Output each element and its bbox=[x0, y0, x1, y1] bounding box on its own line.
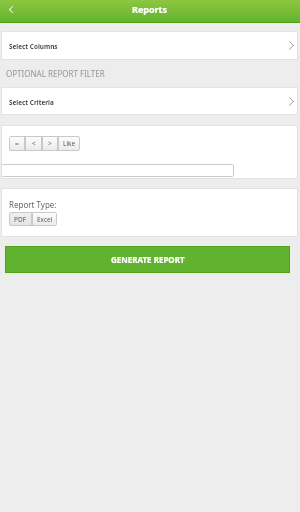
button[interactable]: Select Criteria bbox=[1, 87, 298, 115]
staticText: = bbox=[15, 139, 19, 148]
staticText: OPTIONAL REPORT FILTER bbox=[6, 68, 105, 79]
staticText: Like bbox=[63, 139, 76, 148]
staticText: PDF bbox=[14, 215, 27, 224]
button[interactable]: Excel bbox=[32, 212, 57, 226]
staticText: > bbox=[48, 139, 52, 148]
button[interactable]: > bbox=[42, 136, 58, 151]
button[interactable]: = bbox=[9, 136, 25, 151]
staticText: GENERATE REPORT bbox=[111, 254, 185, 265]
button[interactable]: < bbox=[25, 136, 42, 151]
button[interactable]: Like bbox=[58, 136, 80, 151]
staticText: Excel bbox=[37, 215, 53, 224]
button[interactable]: GENERATE REPORT bbox=[5, 246, 290, 273]
button[interactable] bbox=[1, 164, 234, 177]
button[interactable]: Back bbox=[0, 0, 21, 21]
staticText: Reports bbox=[132, 3, 168, 15]
staticText: < bbox=[32, 139, 36, 148]
button[interactable]: PDF bbox=[9, 212, 32, 226]
staticText: Select Columns bbox=[9, 42, 58, 51]
button[interactable]: Select Columns bbox=[1, 31, 298, 60]
staticText: Select Criteria bbox=[9, 98, 54, 107]
staticText: Report Type: bbox=[9, 199, 57, 210]
